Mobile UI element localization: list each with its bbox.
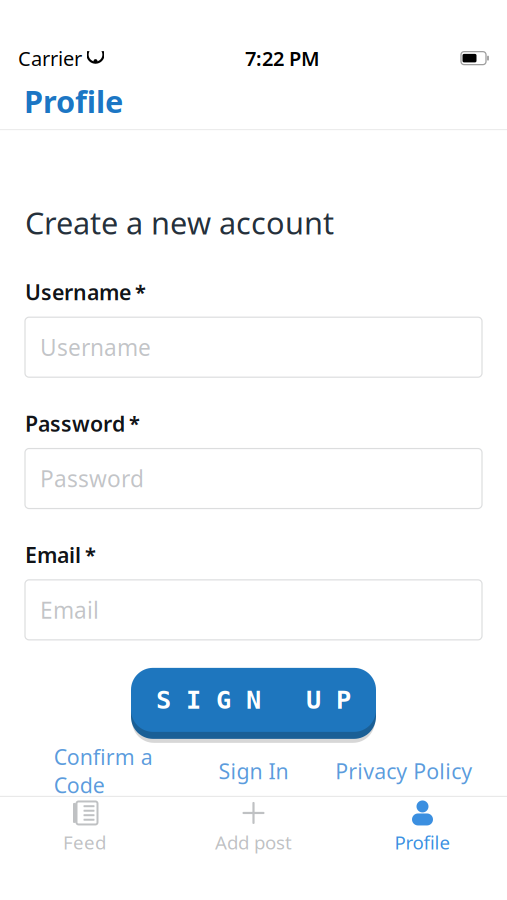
button[interactable]: Password [25,448,482,508]
staticText: Confirm a Code [54,742,153,799]
button[interactable]: Confirm a Code [28,754,178,788]
staticText: Profile [24,81,123,121]
staticText: Email [40,595,99,625]
staticText: Carrier [18,45,82,71]
staticText: Add post [215,830,292,855]
button[interactable]: Privacy Policy [329,754,479,788]
staticText: * [85,541,96,568]
button[interactable]: Profile [338,798,507,856]
button[interactable]: S I G N U P [131,668,376,740]
staticText: * [129,410,140,437]
staticText: Profile [394,830,450,855]
staticText: Feed [63,830,106,855]
button[interactable]: Email [25,580,482,640]
staticText: Username [40,332,151,362]
button[interactable]: Username [25,317,482,377]
staticText: Privacy Policy [335,757,472,785]
staticText: Password [40,463,144,494]
staticText: Username [25,278,131,306]
staticText: * [135,279,146,305]
button[interactable]: Feed [0,798,169,856]
button[interactable]: Sign In [178,754,329,788]
staticText: S I G N U P [156,685,351,714]
staticText: Sign In [218,757,288,785]
staticText: Create a new account [25,202,334,243]
staticText: Password [25,409,125,437]
button[interactable]: Add post [169,798,338,856]
staticText: 7:22 PM [245,45,320,71]
staticText: Email [25,540,81,569]
